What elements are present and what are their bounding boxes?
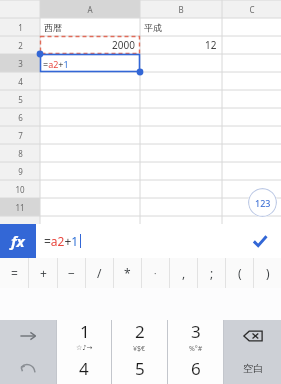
button[interactable]: 7 bbox=[0, 126, 40, 144]
staticText: 3 bbox=[18, 58, 23, 69]
staticText: ; bbox=[210, 265, 214, 281]
staticText: , bbox=[182, 265, 186, 281]
button[interactable]: ; bbox=[198, 258, 225, 288]
button[interactable]: 11 bbox=[0, 198, 40, 216]
button[interactable]: 10 bbox=[0, 180, 40, 198]
button[interactable]: B bbox=[140, 0, 222, 18]
button[interactable]: * bbox=[114, 258, 141, 288]
staticText: · bbox=[154, 267, 157, 279]
button[interactable]: 6 bbox=[168, 352, 223, 384]
staticText: 2 bbox=[135, 320, 145, 343]
button[interactable]: ( bbox=[226, 258, 253, 288]
staticText: 4 bbox=[79, 357, 89, 380]
button[interactable]: Number keyboard bbox=[248, 188, 277, 217]
staticText: ) bbox=[266, 265, 270, 281]
button[interactable]: 3 bbox=[0, 54, 40, 72]
button[interactable]: 5 bbox=[0, 90, 40, 108]
staticText: − bbox=[68, 265, 75, 281]
staticText: 7 bbox=[18, 130, 23, 141]
button[interactable]: Undo bbox=[0, 352, 56, 384]
button[interactable]: C bbox=[222, 0, 281, 18]
staticText: C bbox=[249, 4, 255, 15]
button[interactable]: 8 bbox=[0, 144, 40, 162]
staticText: fx bbox=[11, 231, 25, 251]
button[interactable]: Insert function bbox=[0, 224, 36, 258]
button[interactable]: 2 bbox=[112, 320, 167, 352]
button[interactable]: Backspace bbox=[224, 320, 281, 352]
button[interactable]: = bbox=[0, 258, 28, 288]
staticText: / bbox=[97, 265, 102, 281]
button[interactable]: A bbox=[40, 0, 140, 18]
staticText: 6 bbox=[18, 112, 23, 123]
staticText: ¥$€ bbox=[133, 344, 146, 352]
button[interactable]: Move cursor right bbox=[0, 320, 56, 352]
staticText: 11 bbox=[15, 202, 25, 213]
button[interactable]: 4 bbox=[0, 72, 40, 90]
button[interactable]: 6 bbox=[0, 108, 40, 126]
staticText: 8 bbox=[18, 148, 23, 159]
staticText: A bbox=[87, 4, 93, 15]
staticText: =a2+1 bbox=[43, 58, 69, 70]
button[interactable]: Accept bbox=[239, 224, 281, 258]
button[interactable]: / bbox=[86, 258, 113, 288]
button[interactable]: , bbox=[170, 258, 197, 288]
button[interactable]: 1 bbox=[57, 320, 111, 352]
staticText: ☆♪→ bbox=[76, 344, 93, 352]
staticText: 5 bbox=[18, 94, 23, 105]
staticText: 1 bbox=[18, 22, 23, 33]
button[interactable]: · bbox=[142, 258, 169, 288]
button[interactable]: 3 bbox=[168, 320, 223, 352]
button[interactable]: − bbox=[58, 258, 85, 288]
button[interactable]: 2 bbox=[0, 36, 40, 54]
staticText: 2000 bbox=[112, 38, 135, 52]
button[interactable]: 1 bbox=[0, 18, 40, 36]
button[interactable]: 9 bbox=[0, 162, 40, 180]
staticText: 1 bbox=[80, 320, 90, 343]
button[interactable]: 5 bbox=[112, 352, 167, 384]
staticText: 3 bbox=[191, 320, 201, 343]
button[interactable]: 4 bbox=[57, 352, 111, 384]
staticText: B bbox=[178, 4, 184, 15]
staticText: 空白 bbox=[243, 362, 263, 375]
staticText: = bbox=[11, 265, 18, 281]
button[interactable]: 空白 bbox=[224, 352, 281, 384]
staticText: 5 bbox=[135, 357, 145, 380]
staticText: %°# bbox=[189, 344, 203, 352]
button[interactable]: + bbox=[29, 258, 57, 288]
staticText: 123 bbox=[255, 197, 271, 209]
staticText: 平成 bbox=[144, 22, 162, 33]
staticText: ( bbox=[238, 265, 242, 281]
button[interactable]: =a2+1 bbox=[36, 224, 239, 258]
staticText: =a2+1 bbox=[44, 233, 79, 249]
staticText: 4 bbox=[18, 76, 23, 87]
staticText: 6 bbox=[191, 357, 201, 380]
staticText: 2 bbox=[18, 40, 23, 51]
staticText: * bbox=[124, 265, 131, 281]
button[interactable]: ) bbox=[254, 258, 281, 288]
staticText: 9 bbox=[18, 166, 23, 177]
staticText: 12 bbox=[205, 38, 217, 52]
staticText: 10 bbox=[15, 184, 25, 195]
staticText: + bbox=[40, 265, 47, 281]
staticText: 西暦 bbox=[44, 22, 62, 33]
